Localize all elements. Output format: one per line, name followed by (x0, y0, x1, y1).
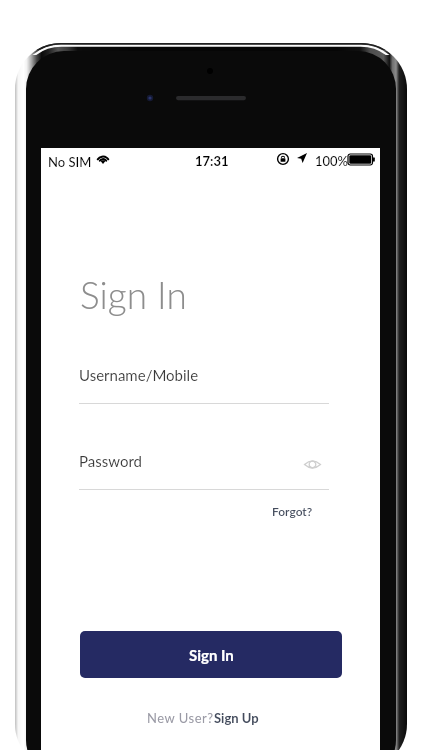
staticText: Password (79, 452, 142, 470)
staticText: Forgot? (272, 504, 313, 518)
button[interactable]: Forgot? (272, 500, 313, 522)
staticText: Username/Mobile (79, 366, 199, 384)
staticText: Sign In (189, 646, 234, 664)
button[interactable]: Show password (296, 448, 328, 480)
staticText: Sign In (80, 272, 187, 316)
staticText: 17:31 (195, 153, 229, 169)
staticText: New User? (147, 710, 214, 726)
staticText: Sign Up (214, 710, 259, 726)
button[interactable]: Sign In (80, 631, 342, 678)
staticText: No SIM (48, 154, 92, 170)
button[interactable]: New User? (147, 710, 259, 726)
staticText: 100% (315, 153, 349, 169)
